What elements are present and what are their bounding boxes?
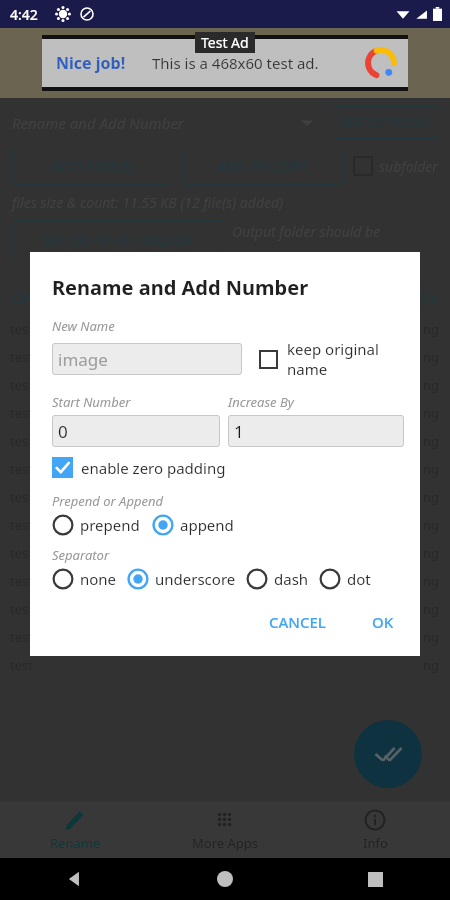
staticText: test: [10, 572, 33, 590]
staticText: test: [10, 376, 33, 394]
staticText: test: [10, 628, 33, 646]
button[interactable]: SET OPTIONS: [333, 106, 438, 139]
staticText: Rename and Add Number: [52, 274, 309, 301]
staticText: none: [80, 569, 117, 589]
staticText: test: [10, 404, 33, 422]
staticText: Rename and Add Number: [12, 113, 184, 133]
staticText: ng: [423, 600, 440, 618]
staticText: More Apps: [192, 834, 259, 852]
staticText: test: [10, 488, 33, 506]
staticText: ng: [423, 320, 440, 338]
staticText: dot: [347, 569, 371, 589]
staticText: test: [10, 516, 33, 534]
staticText: ng: [423, 460, 440, 478]
staticText: ng: [423, 404, 440, 422]
staticText: ng: [423, 488, 440, 506]
staticText: ADD FILE(S): [51, 156, 134, 176]
staticText: ME: [417, 288, 438, 307]
staticText: ng: [423, 628, 440, 646]
button[interactable]: CANCEL: [259, 606, 336, 638]
button[interactable]: SET OUTPUT FOLDER: [12, 220, 222, 258]
staticText: keep original name: [287, 339, 404, 379]
staticText: SET OPTIONS: [341, 113, 430, 132]
staticText: test: [10, 600, 33, 618]
button[interactable]: Apply rename: [354, 720, 422, 788]
button[interactable]: dot: [319, 568, 371, 590]
staticText: Separator: [52, 546, 110, 564]
button[interactable]: append: [152, 514, 234, 536]
staticText: dash: [274, 569, 309, 589]
button[interactable]: none: [52, 568, 117, 590]
staticText: New Name: [52, 317, 115, 335]
staticText: This is a 468x60 test ad.: [152, 53, 319, 73]
staticText: test: [10, 656, 33, 674]
staticText: ng: [423, 432, 440, 450]
staticText: test: [10, 544, 33, 562]
staticText: Rename: [50, 834, 101, 852]
staticText: ng: [423, 544, 440, 562]
staticText: ng: [423, 348, 440, 366]
staticText: Prepend or Append: [52, 492, 163, 510]
staticText: append: [180, 515, 234, 535]
staticText: Nice job!: [56, 52, 126, 74]
button[interactable]: prepend: [52, 514, 140, 536]
staticText: CANCEL: [269, 612, 326, 632]
staticText: ng: [423, 656, 440, 674]
button[interactable]: 1: [228, 415, 404, 447]
button[interactable]: dash: [246, 568, 309, 590]
staticText: ng: [423, 376, 440, 394]
button[interactable]: [52, 457, 73, 478]
staticText: 1: [234, 420, 244, 443]
other: Home: [217, 871, 233, 887]
button[interactable]: ADD FOLDER: [182, 147, 343, 185]
staticText: test: [10, 348, 33, 366]
staticText: prepend: [80, 515, 140, 535]
staticText: SET OUTPUT FOLDER: [42, 229, 192, 249]
staticText: files size & count: 11.55 KB (12 file(s)…: [12, 193, 284, 212]
staticText: OR: [12, 288, 32, 307]
staticText: test: [10, 460, 33, 478]
staticText: Test Ad: [201, 33, 249, 52]
staticText: Output folder should be: [232, 222, 381, 241]
button[interactable]: OK: [362, 606, 404, 638]
staticText: underscore: [155, 569, 236, 589]
button[interactable]: image: [52, 343, 242, 375]
button[interactable]: Info: [300, 809, 450, 852]
button[interactable]: enable zero padding: [52, 457, 226, 478]
staticText: Increase By: [228, 393, 294, 411]
button[interactable]: [258, 349, 279, 370]
staticText: 4:42: [10, 5, 38, 24]
staticText: test: [10, 320, 33, 338]
staticText: ADD FOLDER: [216, 156, 309, 176]
other: Back: [66, 870, 84, 888]
button[interactable]: underscore: [127, 568, 236, 590]
staticText: Start Number: [52, 393, 131, 411]
staticText: ng: [423, 516, 440, 534]
staticText: Info: [363, 834, 388, 852]
staticText: image: [58, 348, 108, 371]
staticText: subfolder: [379, 157, 438, 176]
staticText: enable zero padding: [81, 458, 226, 478]
staticText: OK: [372, 612, 394, 632]
button[interactable]: More Apps: [150, 809, 300, 852]
staticText: ng: [423, 572, 440, 590]
staticText: test: [10, 432, 33, 450]
staticText: 0: [58, 420, 68, 443]
button[interactable]: 0: [52, 415, 220, 447]
button[interactable]: Rename: [0, 809, 150, 852]
button[interactable]: ADD FILE(S): [12, 147, 172, 185]
